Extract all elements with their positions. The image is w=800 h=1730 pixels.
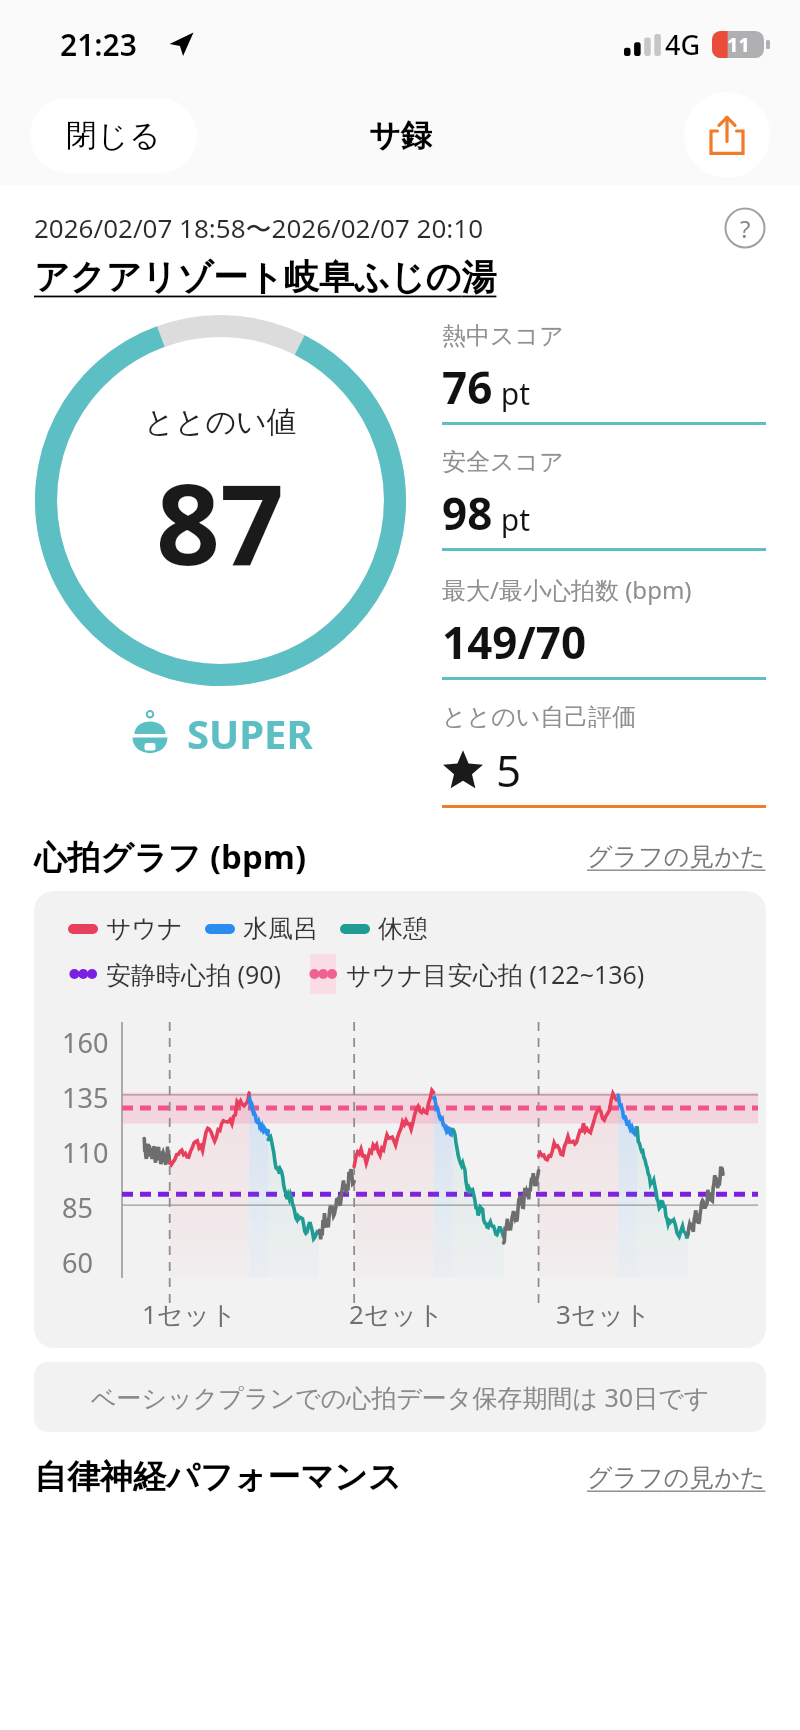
staticText: 安静時心拍 (90) bbox=[106, 957, 282, 991]
staticText: pt bbox=[493, 373, 531, 414]
staticText: 2セット bbox=[349, 1296, 444, 1332]
staticText: 110 bbox=[62, 1134, 109, 1171]
staticText: 60 bbox=[62, 1244, 93, 1281]
staticText: グラフの見かた bbox=[587, 841, 766, 872]
button[interactable]: Share bbox=[684, 92, 770, 178]
staticText: 休憩 bbox=[378, 913, 428, 944]
staticText: 熱中スコア bbox=[442, 321, 564, 351]
staticText: 自律神経パフォーマンス bbox=[34, 1456, 402, 1498]
staticText: グラフの見かた bbox=[587, 1462, 766, 1493]
staticText: 98 bbox=[442, 483, 493, 543]
staticText: 安全スコア bbox=[442, 447, 564, 477]
staticText: 21:23 bbox=[60, 24, 137, 65]
staticText: 76 bbox=[442, 357, 493, 417]
staticText: 3セット bbox=[556, 1296, 651, 1332]
staticText: 心拍グラフ (bpm) bbox=[34, 834, 307, 879]
staticText: ととのい値 bbox=[144, 403, 297, 441]
staticText: ベーシックプランでの心拍データ保存期間は 30日です bbox=[91, 1380, 710, 1414]
staticText: 1セット bbox=[142, 1296, 237, 1332]
button[interactable]: グラフの見かた bbox=[587, 1462, 766, 1493]
staticText: 87 bbox=[156, 445, 285, 598]
staticText: 5 bbox=[496, 740, 522, 800]
staticText: 最大/最小心拍数 (bpm) bbox=[442, 573, 692, 606]
staticText: 2026/02/07 18:58〜2026/02/07 20:10 bbox=[34, 210, 484, 246]
staticText: サウナ目安心拍 (122~136) bbox=[346, 957, 645, 991]
staticText: 水風呂 bbox=[243, 913, 318, 944]
staticText: 閉じる bbox=[66, 116, 161, 155]
staticText: ? bbox=[740, 212, 751, 245]
staticText: 4G bbox=[665, 26, 701, 63]
staticText: ととのい自己評価 bbox=[442, 702, 637, 732]
staticText: 11 bbox=[727, 31, 750, 58]
button[interactable]: アクアリゾート岐阜ふじの湯 bbox=[34, 255, 497, 299]
button[interactable]: 閉じる bbox=[30, 98, 197, 173]
staticText: サ録 bbox=[369, 116, 432, 155]
staticText: アクアリゾート岐阜ふじの湯 bbox=[34, 255, 497, 299]
staticText: SUPER bbox=[187, 706, 313, 760]
staticText: pt bbox=[493, 499, 531, 540]
button[interactable]: グラフの見かた bbox=[587, 841, 766, 872]
staticText: 149/70 bbox=[442, 612, 587, 672]
button[interactable]: Help bbox=[724, 207, 766, 249]
staticText: サウナ bbox=[106, 913, 183, 944]
staticText: 160 bbox=[62, 1024, 109, 1061]
staticText: 135 bbox=[62, 1079, 109, 1116]
staticText: 85 bbox=[62, 1189, 93, 1226]
